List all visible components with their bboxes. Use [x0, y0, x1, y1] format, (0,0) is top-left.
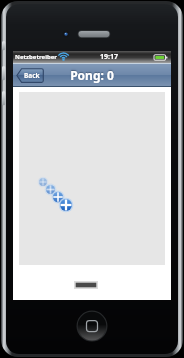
staticText: Pong: 0: [70, 67, 114, 83]
staticText: 19:17: [100, 52, 118, 62]
staticText: Back: [24, 71, 40, 80]
staticText: Netzbetreiber: [15, 53, 57, 61]
button[interactable]: [19, 92, 165, 265]
button[interactable]: Back: [16, 68, 44, 83]
button[interactable]: Home: [0, 300, 184, 358]
